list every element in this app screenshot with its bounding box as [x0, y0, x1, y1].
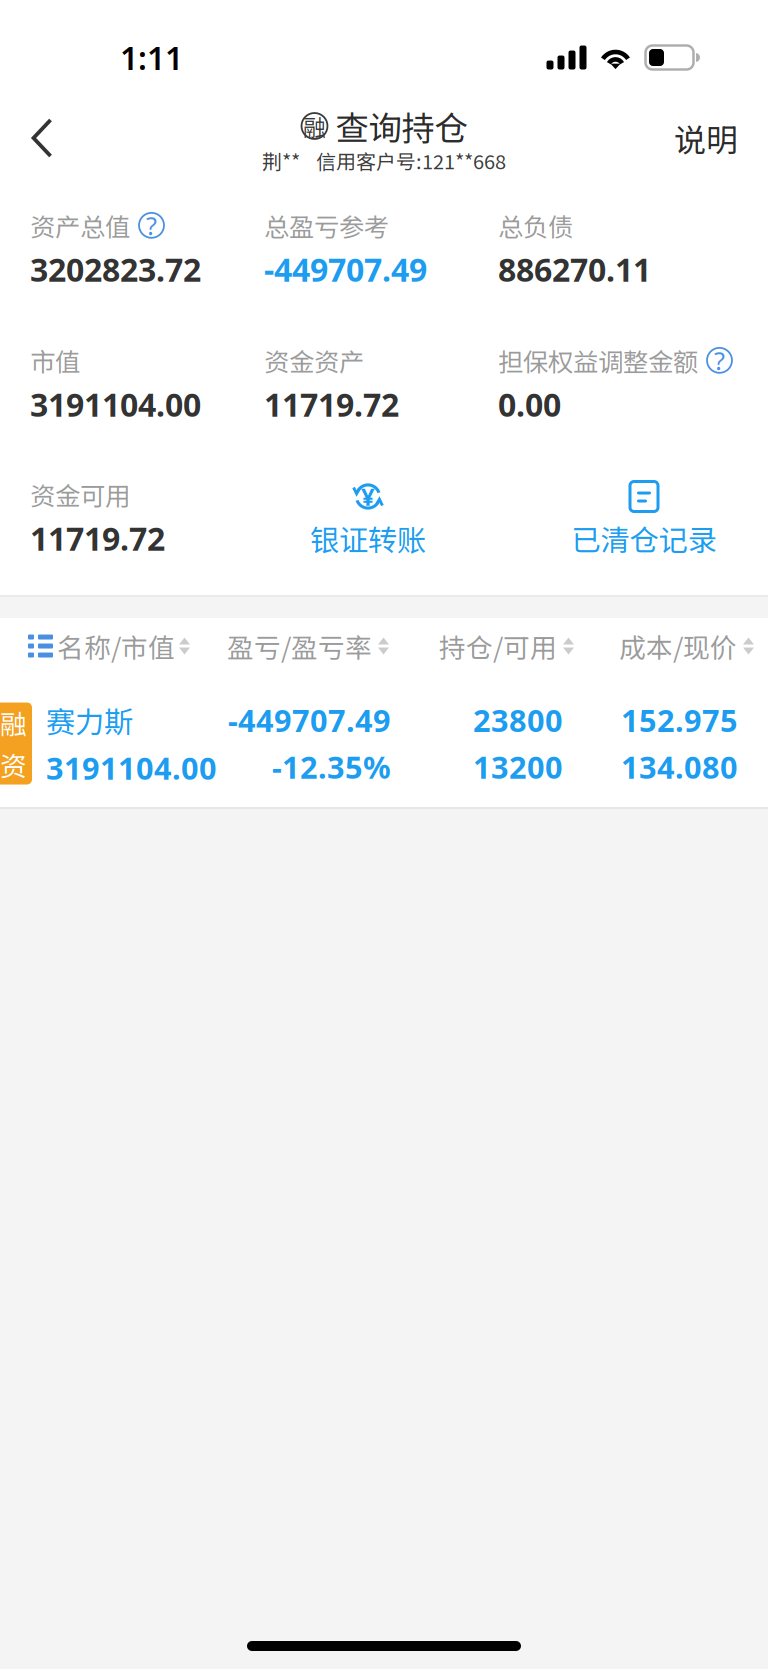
staticText: 名称/市值 [57, 627, 175, 665]
staticText: ? [714, 343, 725, 377]
staticText: -449707.49 [264, 248, 427, 290]
button[interactable]: 已清仓记录 [498, 476, 768, 547]
button[interactable]: 说明 [666, 101, 746, 175]
staticText: -449707.49 [228, 700, 391, 740]
button[interactable]: ¥ [238, 476, 498, 547]
staticText: 已清仓记录 [571, 517, 716, 559]
staticText: 3191104.00 [46, 747, 217, 788]
staticText: 市值 [30, 342, 80, 379]
staticText: 担保权益调整金额 [498, 342, 698, 379]
staticText: 银证转账 [310, 517, 426, 559]
staticText: 152.975 [621, 700, 738, 740]
button[interactable]: 融 [0, 684, 768, 807]
staticText: 3191104.00 [30, 383, 201, 425]
staticText: 融 [0, 703, 27, 742]
button[interactable]: 返回 [7, 103, 77, 173]
staticText: 荆** 信用客户号:121**668 [262, 146, 506, 175]
staticText: -12.35% [272, 746, 391, 787]
staticText: 总负债 [498, 207, 573, 244]
button[interactable]: 成本/现价 [574, 627, 754, 665]
staticText: 3202823.72 [30, 248, 201, 290]
staticText: 资金可用 [30, 476, 130, 513]
staticText: 13200 [473, 746, 563, 787]
staticText: 成本/现价 [619, 627, 737, 665]
staticText: 886270.11 [498, 248, 651, 290]
button[interactable]: 名称/市值 [28, 627, 186, 665]
staticText: 0.00 [498, 383, 561, 425]
staticText: 1:11 [120, 36, 183, 79]
staticText: 盈亏/盈亏率 [227, 627, 372, 665]
button[interactable]: 盈亏/盈亏率 [186, 627, 389, 665]
staticText: 资产总值 [30, 207, 130, 244]
staticText: 资金资产 [264, 342, 364, 379]
staticText: 11719.72 [30, 517, 165, 559]
staticText: 11719.72 [264, 383, 399, 425]
staticText: 总盈亏参考 [264, 207, 389, 244]
staticText: ? [146, 208, 157, 242]
staticText: 134.080 [621, 746, 738, 787]
staticText: 融 [303, 110, 326, 142]
staticText: 23800 [473, 700, 563, 740]
staticText: ¥ [361, 481, 375, 512]
staticText: 资 [0, 745, 27, 784]
staticText: 持仓/可用 [439, 627, 557, 665]
staticText: 说明 [674, 115, 738, 161]
staticText: 赛力斯 [46, 699, 133, 741]
button[interactable]: 持仓/可用 [389, 627, 574, 665]
staticText: 查询持仓 [335, 102, 467, 150]
